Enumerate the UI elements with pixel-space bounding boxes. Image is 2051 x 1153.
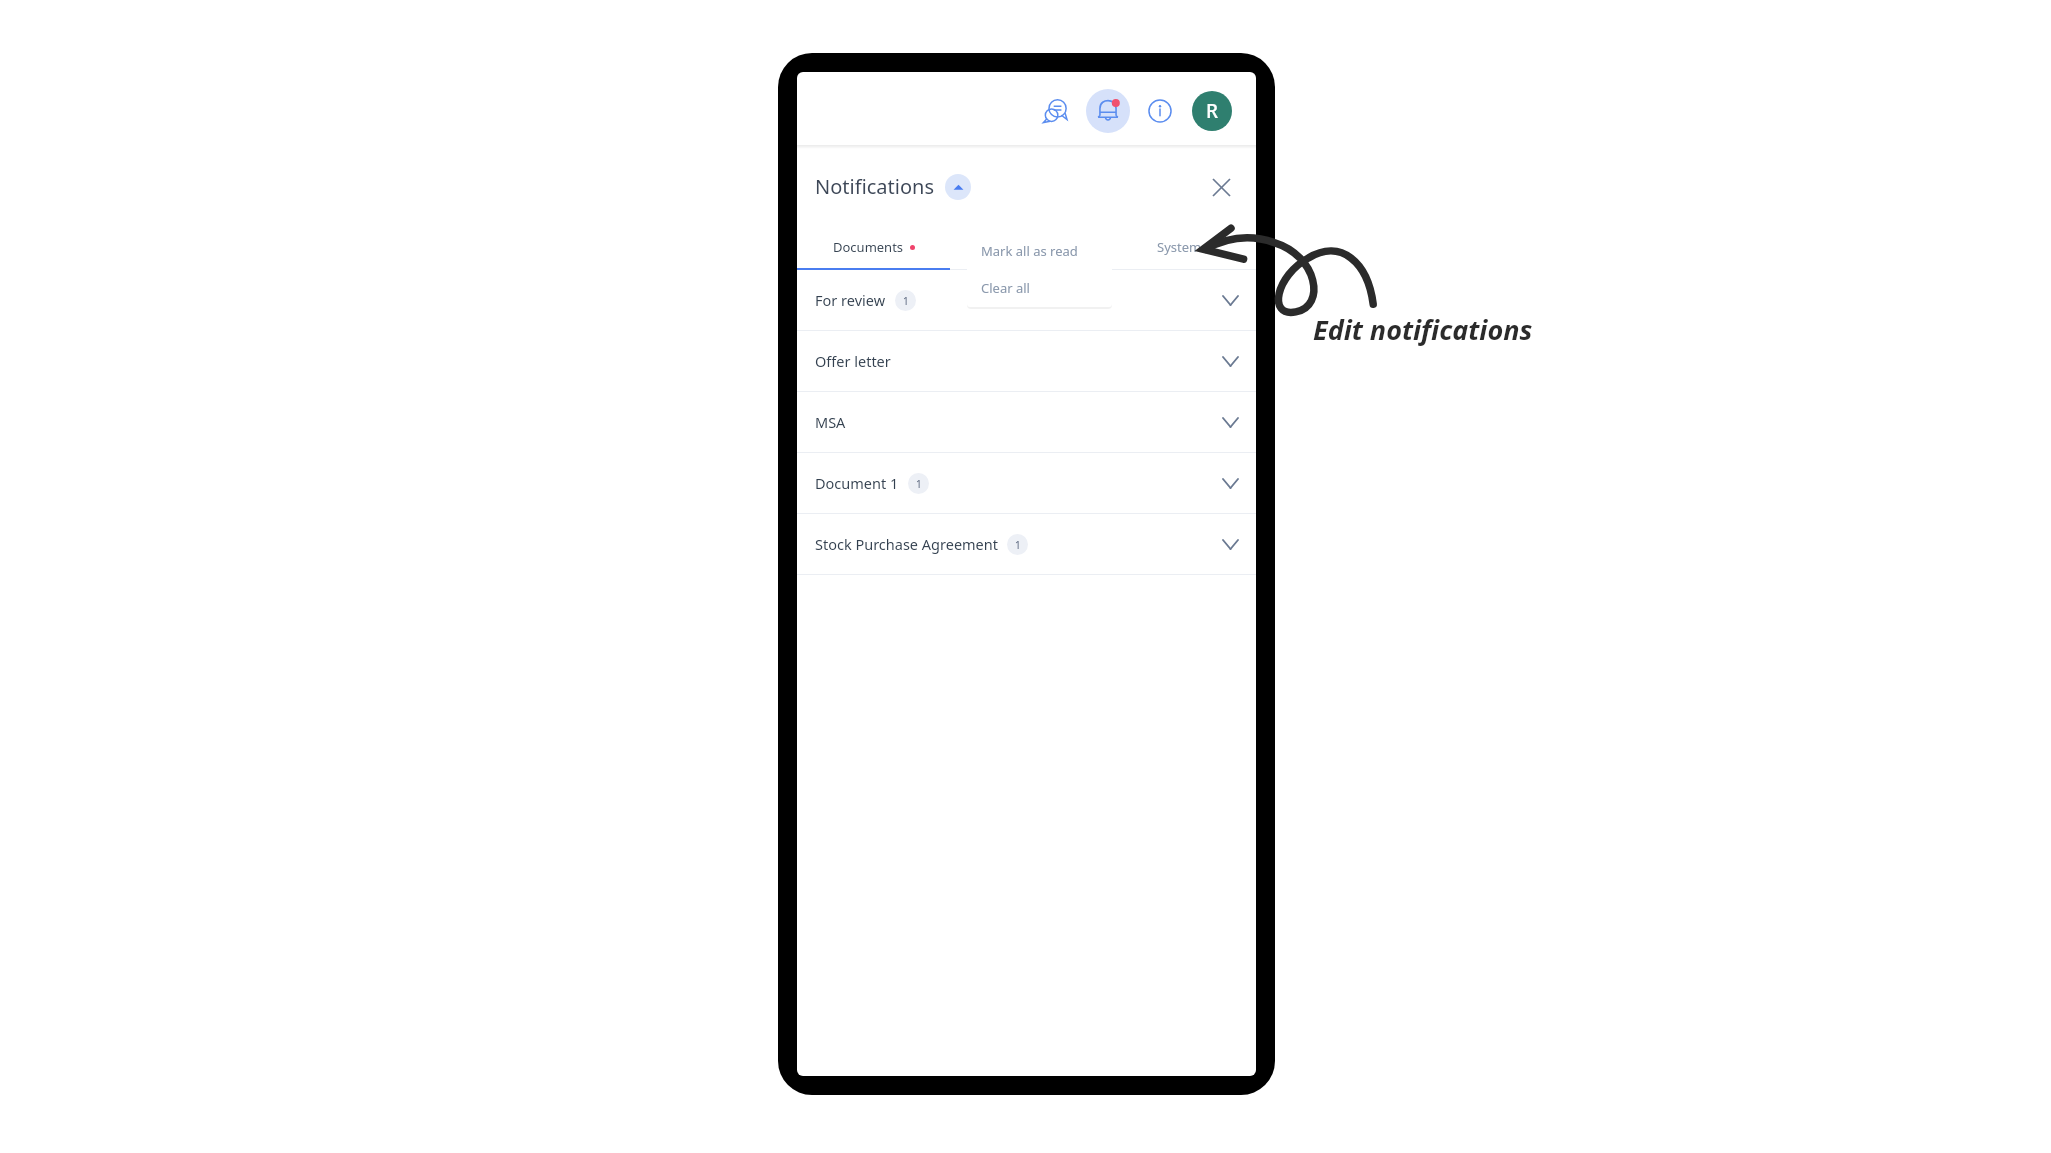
button[interactable]: Notification options	[945, 174, 971, 200]
button[interactable]: Help	[1138, 89, 1182, 133]
button[interactable]: Documents	[797, 224, 950, 270]
staticText: Documents	[833, 238, 904, 256]
staticText: Tasks	[1010, 238, 1043, 256]
staticText: R	[1206, 98, 1219, 124]
staticText: Notifications	[815, 173, 934, 200]
staticText: For review	[815, 290, 886, 310]
button[interactable]: Close	[1204, 170, 1238, 204]
staticText: Clear all	[981, 279, 1030, 297]
button[interactable]: Notifications	[1086, 89, 1130, 133]
button[interactable]: Profile	[1192, 91, 1232, 131]
button[interactable]: Offer letter	[797, 331, 1256, 391]
staticText: System	[1157, 238, 1202, 256]
staticText: Offer letter	[815, 351, 891, 371]
staticText: Edit notifications	[1313, 311, 1533, 348]
button[interactable]: Tasks	[950, 224, 1103, 270]
button[interactable]: MSA	[797, 392, 1256, 452]
staticText: Stock Purchase Agreement	[815, 534, 998, 554]
staticText: MSA	[815, 412, 846, 432]
staticText: 1	[1015, 538, 1021, 552]
staticText: 1	[916, 477, 922, 491]
staticText: 1	[903, 294, 909, 308]
staticText: Document 1	[815, 473, 899, 493]
button[interactable]: System	[1103, 224, 1256, 270]
button[interactable]: Document 1	[797, 453, 1256, 513]
button[interactable]: Mark all as read	[967, 232, 1112, 269]
button[interactable]: Stock Purchase Agreement	[797, 514, 1256, 574]
button[interactable]: Messages	[1034, 89, 1078, 133]
button[interactable]: Clear all	[967, 269, 1112, 307]
button[interactable]: For review	[797, 270, 1256, 330]
staticText: Mark all as read	[981, 242, 1078, 260]
